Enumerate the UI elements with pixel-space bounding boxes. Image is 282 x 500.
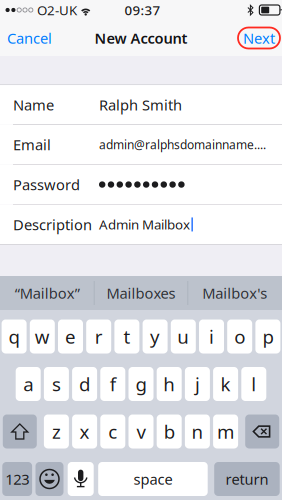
button[interactable]: l: [241, 367, 266, 401]
staticText: Next: [243, 28, 275, 48]
staticText: Email: [13, 135, 51, 154]
staticText: Password: [13, 175, 80, 194]
staticText: x: [80, 419, 90, 444]
button[interactable]: u: [171, 319, 196, 353]
staticText: p: [262, 324, 273, 349]
staticText: h: [163, 372, 175, 396]
button[interactable]: t: [114, 319, 139, 353]
staticText: i: [209, 324, 214, 349]
staticText: j: [195, 372, 200, 396]
button[interactable]: return: [214, 462, 280, 496]
button[interactable]: k: [213, 367, 238, 401]
button[interactable]: h: [157, 367, 182, 401]
staticText: f: [110, 372, 116, 396]
button[interactable]: c: [100, 414, 125, 448]
button[interactable]: g: [128, 367, 153, 401]
staticText: t: [123, 324, 130, 349]
button[interactable]: f: [100, 367, 125, 401]
staticText: Admin Mailbox: [99, 216, 190, 233]
button[interactable]: w: [30, 319, 55, 353]
staticText: Cancel: [7, 28, 52, 48]
button[interactable]: “Mailbox”: [1, 276, 94, 310]
button[interactable]: Mailboxes: [94, 276, 187, 310]
button[interactable]: b: [157, 414, 182, 448]
staticText: return: [225, 469, 268, 489]
staticText: v: [136, 419, 145, 444]
staticText: admin@ralphsdomainname....: [99, 137, 266, 153]
button[interactable]: r: [86, 319, 111, 353]
staticText: O2-UK: [37, 1, 77, 19]
staticText: space: [133, 469, 172, 489]
button[interactable]: Mailbox's: [188, 276, 281, 310]
staticText: Ralph Smith: [99, 95, 182, 114]
button[interactable]: o: [227, 319, 252, 353]
button[interactable]: q: [2, 319, 27, 353]
button[interactable]: y: [143, 319, 168, 353]
staticText: 09:37: [124, 1, 160, 19]
button[interactable]: Next: [238, 27, 280, 48]
staticText: Description: [13, 215, 92, 234]
staticText: n: [191, 419, 203, 444]
button[interactable]: Cancel: [7, 22, 62, 54]
button[interactable]: d: [72, 367, 97, 401]
button[interactable]: Emoji: [35, 462, 63, 496]
staticText: c: [108, 419, 117, 444]
staticText: m: [217, 419, 234, 444]
button[interactable]: Dictate: [68, 462, 94, 496]
staticText: k: [221, 372, 231, 396]
staticText: New Account: [94, 28, 187, 48]
button[interactable]: x: [72, 414, 97, 448]
staticText: Mailbox's: [202, 283, 267, 303]
staticText: o: [234, 324, 245, 349]
staticText: d: [79, 372, 90, 396]
button[interactable]: e: [58, 319, 83, 353]
staticText: Mailboxes: [106, 283, 175, 303]
staticText: q: [9, 324, 20, 349]
staticText: s: [52, 372, 61, 396]
staticText: u: [177, 324, 189, 349]
button[interactable]: i: [199, 319, 224, 353]
button[interactable]: v: [128, 414, 153, 448]
button[interactable]: p: [255, 319, 280, 353]
staticText: a: [23, 372, 33, 396]
staticText: e: [65, 324, 76, 349]
staticText: r: [95, 324, 103, 349]
button[interactable]: a: [16, 367, 41, 401]
button[interactable]: Delete: [245, 414, 279, 448]
button[interactable]: 123: [2, 462, 32, 496]
staticText: g: [135, 372, 146, 396]
staticText: “Mailbox”: [15, 283, 80, 303]
button[interactable]: z: [44, 414, 69, 448]
staticText: 123: [5, 469, 29, 489]
button[interactable]: j: [185, 367, 210, 401]
staticText: y: [150, 324, 160, 349]
staticText: Name: [13, 95, 54, 114]
button[interactable]: n: [185, 414, 210, 448]
staticText: b: [164, 419, 175, 444]
button[interactable]: Shift: [3, 414, 37, 448]
staticText: l: [251, 372, 256, 396]
button[interactable]: m: [213, 414, 238, 448]
button[interactable]: space: [98, 462, 208, 496]
button[interactable]: s: [44, 367, 69, 401]
staticText: w: [35, 324, 50, 349]
staticText: z: [52, 419, 61, 444]
